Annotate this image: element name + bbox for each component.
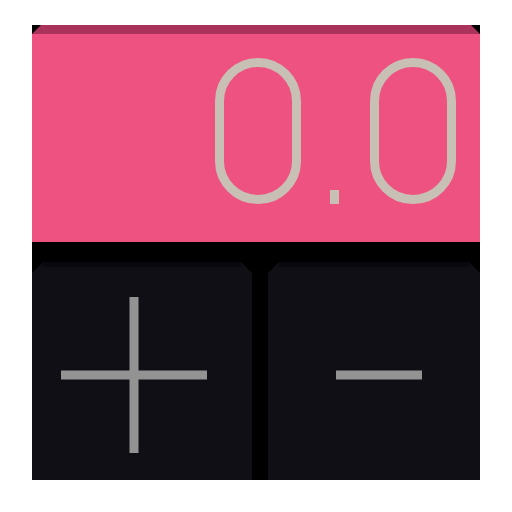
- button[interactable]: Counter display 0.0: [32, 25, 480, 242]
- button[interactable]: Decrease: [268, 262, 480, 480]
- button[interactable]: Increase: [32, 262, 252, 480]
